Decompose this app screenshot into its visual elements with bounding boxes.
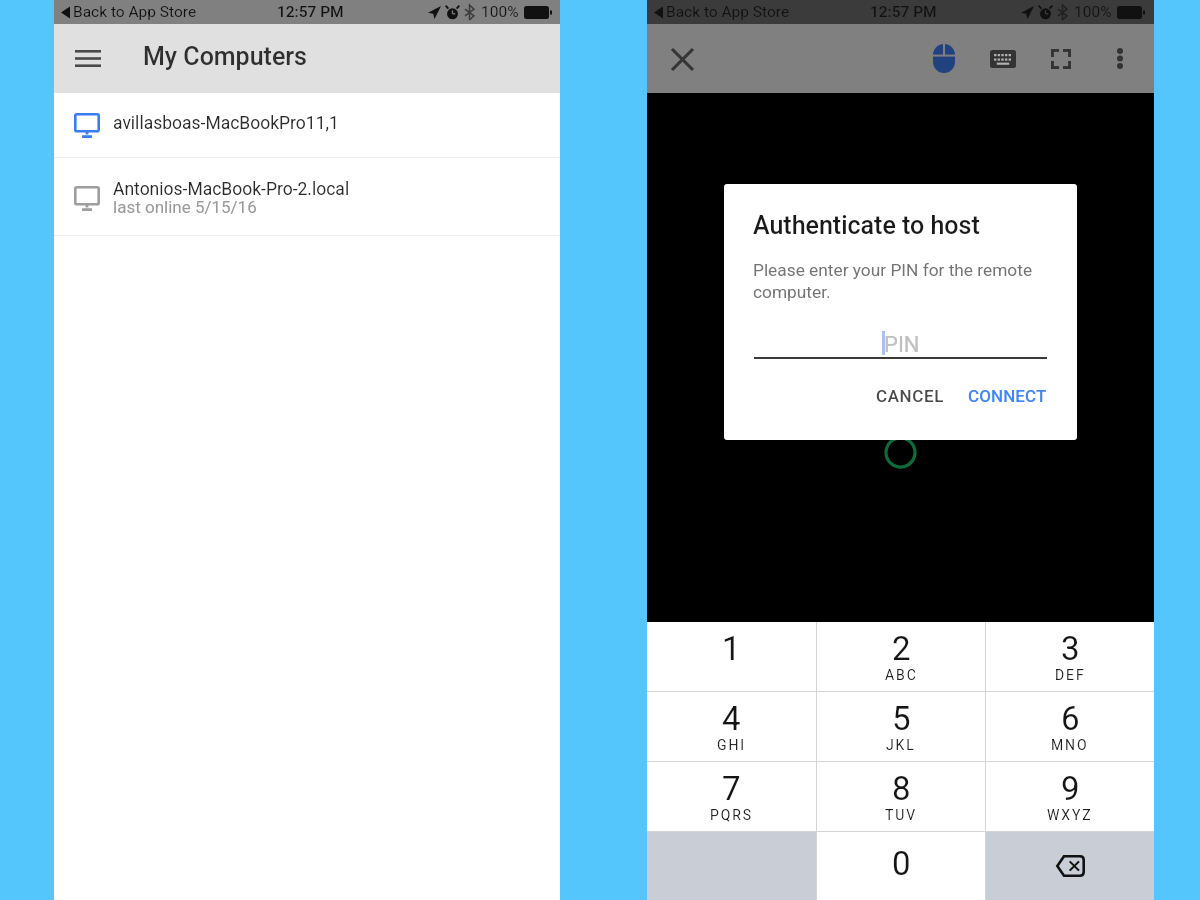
button[interactable]: 3 (986, 622, 1154, 691)
button[interactable]: Menu (65, 35, 111, 81)
staticText: 6 (1061, 699, 1080, 738)
staticText: DEF (1055, 667, 1086, 683)
staticText: 4 (722, 699, 741, 738)
staticText: 100% (1074, 3, 1112, 21)
button[interactable]: Close (659, 36, 705, 82)
button[interactable]: 9 (986, 762, 1154, 831)
button[interactable]: 0 (817, 832, 985, 900)
button[interactable]: Fullscreen (1038, 36, 1083, 81)
staticText: 0 (892, 844, 911, 883)
staticText: CANCEL (876, 386, 944, 406)
staticText: 12:57 PM (870, 3, 937, 21)
staticText: 2 (892, 629, 911, 668)
button[interactable]: CONNECT (957, 378, 1058, 414)
staticText: 100% (481, 3, 519, 21)
button[interactable]: 4 (647, 692, 816, 761)
staticText: WXYZ (1047, 807, 1093, 823)
button[interactable]: Mouse mode (921, 36, 966, 81)
staticText: My Computers (143, 42, 307, 71)
staticText: 3 (1061, 629, 1080, 668)
staticText: PQRS (710, 807, 754, 823)
button[interactable]: Keyboard (980, 36, 1025, 81)
staticText: 8 (892, 769, 911, 808)
staticText: GHI (717, 737, 747, 753)
staticText: avillasboas-MacBookPro11,1 (113, 113, 339, 134)
staticText: CONNECT (968, 386, 1047, 406)
staticText: Back to App Store (73, 3, 197, 21)
staticText: 1 (722, 629, 741, 668)
button[interactable]: avillasboas-MacBookPro11,1 (54, 93, 560, 157)
button[interactable]: 7 (647, 762, 816, 831)
button[interactable]: CANCEL (865, 378, 955, 414)
staticText: ABC (885, 667, 918, 683)
staticText: PIN (884, 332, 920, 358)
button[interactable]: Antonios-MacBook-Pro-2.local (54, 158, 560, 235)
staticText: 5 (892, 699, 911, 738)
button[interactable]: 1 (647, 622, 816, 691)
button[interactable]: 6 (986, 692, 1154, 761)
staticText: Please enter your PIN for the remote com… (753, 260, 1043, 303)
button[interactable]: More options (1097, 36, 1142, 81)
button[interactable]: 5 (817, 692, 985, 761)
staticText: Back to App Store (666, 3, 790, 21)
staticText: TUV (885, 807, 918, 823)
staticText: last online 5/15/16 (113, 197, 257, 217)
button[interactable]: 8 (817, 762, 985, 831)
staticText: 9 (1061, 769, 1080, 808)
staticText: 12:57 PM (277, 3, 344, 21)
staticText: JKL (886, 737, 916, 753)
staticText: 7 (722, 769, 741, 808)
staticText: Authenticate to host (753, 211, 980, 240)
staticText: MNO (1051, 737, 1089, 753)
button[interactable]: 2 (817, 622, 985, 691)
button[interactable]: Backspace (986, 832, 1154, 900)
staticText: Antonios-MacBook-Pro-2.local (113, 179, 350, 200)
